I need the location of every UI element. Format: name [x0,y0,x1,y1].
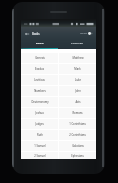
staticText: Numbers [34,89,46,93]
button[interactable]: Galatians [59,141,96,151]
button[interactable]: Acts [59,97,96,107]
staticText: Acts [75,100,81,104]
button[interactable]: Leviticus [21,75,58,85]
staticText: Galatians [72,144,84,148]
button[interactable]: 2 Corinthians [59,130,96,140]
staticText: Deuteronomy [31,100,49,104]
staticText: Matthew [72,56,84,60]
button[interactable]: Joshua [21,108,58,118]
button[interactable]: Genesis [21,53,58,63]
staticText: Joshua [35,111,44,115]
staticText: Ephesians [71,154,84,158]
button[interactable]: Romans [59,108,96,118]
button[interactable]: 1 Corinthians [59,119,96,129]
button[interactable]: Mark [59,64,96,74]
staticText: Exodus [35,67,44,71]
button[interactable]: Judges [21,119,58,129]
button[interactable]: CHAPTER [58,39,96,48]
button[interactable]: Ephesians [59,152,96,159]
staticText: 2 Samuel [34,154,46,158]
staticText: Judges [35,122,44,126]
staticText: Genesis [35,56,45,60]
staticText: Luke [75,78,81,82]
button[interactable]: Deuteronomy [21,97,58,107]
staticText: Books [32,32,40,36]
staticText: Mark [74,67,81,71]
button[interactable]: BOOK [21,39,58,48]
button[interactable]: 2 Samuel [21,152,58,159]
staticText: Verses [80,32,87,35]
staticText: Ruth [37,133,43,137]
button[interactable]: Ruth [21,130,58,140]
staticText: Leviticus [34,78,45,82]
staticText: BOOK [36,42,44,45]
button[interactable]: Verses [80,28,96,39]
staticText: 2 Corinthians [69,133,86,137]
staticText: John [75,89,81,93]
button[interactable]: Numbers [21,86,58,96]
button[interactable]: Exodus [21,64,58,74]
button[interactable]: 1 Samuel [21,141,58,151]
staticText: 1 Corinthians [69,122,86,126]
button[interactable]: Back [21,28,32,39]
staticText: 1 Samuel [34,144,46,148]
staticText: Romans [72,111,83,115]
button[interactable]: Luke [59,75,96,85]
button[interactable]: Matthew [59,53,96,63]
staticText: CHAPTER [71,42,84,45]
button[interactable]: John [59,86,96,96]
